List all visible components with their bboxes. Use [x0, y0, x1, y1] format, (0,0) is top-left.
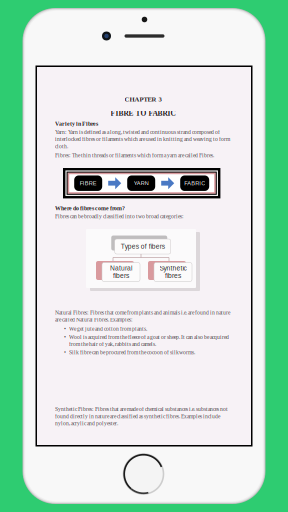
staticText: fibres [165, 272, 181, 279]
staticText: Variety in Fibres [55, 120, 98, 127]
staticText: FIBRE TO FABRIC [110, 108, 175, 118]
staticText: Natural Fibres: Fibres that come from pl… [55, 309, 230, 323]
staticText: Fibres: The thin threads or filaments wh… [55, 152, 214, 159]
staticText: Fibres can be broadly classified into tw… [55, 213, 184, 220]
staticText: CHAPTER 3 [124, 95, 161, 103]
staticText: Natural [110, 265, 132, 272]
staticText: Wool is acquired from the fleece of a go… [69, 333, 229, 348]
staticText: • [64, 325, 66, 332]
staticText: fibers [113, 272, 129, 279]
staticText: • [64, 333, 66, 340]
staticText: Yarn: Yarn is defined as a long, twisted… [55, 128, 230, 150]
staticText: FIBRE [80, 180, 97, 186]
staticText: Synthetic Fibres: Fibres that are made o… [55, 406, 228, 427]
staticText: Where do fibres come from? [55, 204, 125, 212]
staticText: • [64, 349, 66, 356]
staticText: We get jute and cotton from plants. [69, 325, 147, 332]
staticText: Types of fibers [121, 243, 165, 250]
staticText: FABRIC [184, 180, 205, 186]
staticText: Synthetic [159, 265, 186, 272]
staticText: Silk fibre can be procured from the coco… [69, 349, 195, 356]
staticText: YARN [134, 180, 149, 186]
